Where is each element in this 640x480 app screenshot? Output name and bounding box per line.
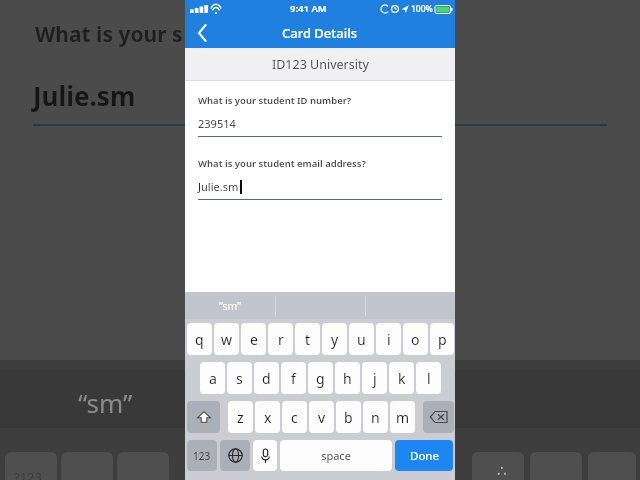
staticText: Done [410, 448, 439, 464]
staticText: w [221, 330, 233, 349]
button[interactable]: w [214, 323, 239, 355]
staticText: q [195, 330, 204, 349]
button[interactable]: d [254, 362, 279, 394]
staticText: “sm” [78, 385, 133, 420]
staticText: x [264, 408, 272, 427]
staticText: o [411, 330, 420, 349]
button[interactable]: space [280, 440, 392, 471]
button[interactable]: q [187, 323, 212, 355]
staticText: Julie.sm [198, 179, 239, 194]
staticText: Card Details [282, 24, 358, 42]
button[interactable]: z [228, 401, 253, 433]
staticText: i [387, 330, 391, 349]
button[interactable]: Shift [187, 401, 220, 433]
staticText: y [331, 330, 339, 349]
button[interactable]: What is your student email address? [198, 157, 442, 200]
staticText: space [321, 448, 351, 463]
button[interactable]: y [322, 323, 347, 355]
staticText: f [291, 369, 296, 388]
staticText: r [278, 330, 284, 349]
button[interactable]: s [227, 362, 252, 394]
staticText: b [344, 408, 353, 427]
button[interactable]: j [362, 362, 387, 394]
staticText: l [427, 369, 431, 388]
staticText: e [250, 330, 258, 349]
staticText: c [291, 408, 298, 427]
staticText: z [237, 408, 244, 427]
button[interactable]: g [308, 362, 333, 394]
button[interactable]: v [309, 401, 334, 433]
button[interactable]: Back [185, 17, 219, 48]
staticText: m [396, 408, 410, 427]
button[interactable]: i [376, 323, 401, 355]
button[interactable]: c [282, 401, 307, 433]
staticText: k [398, 369, 406, 388]
staticText: 9:41 AM [290, 2, 327, 15]
staticText: j [373, 369, 377, 388]
staticText: ID123 University [272, 56, 369, 73]
staticText: d [262, 369, 271, 388]
staticText: n [371, 408, 380, 427]
staticText: What is your student ID number? [198, 94, 352, 107]
button[interactable]: k [389, 362, 414, 394]
staticText: 123 [193, 449, 211, 463]
button[interactable]: m [390, 401, 415, 433]
button[interactable]: u [349, 323, 374, 355]
staticText: v [318, 408, 326, 427]
button[interactable]: What is your student ID number? [198, 94, 442, 137]
button[interactable]: o [403, 323, 428, 355]
button[interactable]: p [430, 323, 454, 355]
button[interactable]: l [416, 362, 441, 394]
staticText: a [209, 369, 217, 388]
staticText: h [343, 369, 352, 388]
staticText: t [305, 330, 311, 349]
button[interactable]: Backspace [423, 401, 454, 433]
staticText: s [236, 369, 243, 388]
staticText: u [357, 330, 366, 349]
staticText: ∴ [497, 462, 507, 479]
staticText: 100% [411, 3, 433, 15]
button[interactable]: h [335, 362, 360, 394]
button[interactable]: a [200, 362, 225, 394]
staticText: “sm” [219, 299, 241, 313]
button[interactable]: Change keyboard language [220, 440, 250, 471]
button[interactable]: r [268, 323, 293, 355]
button[interactable]: f [281, 362, 306, 394]
button[interactable]: “sm” [185, 292, 275, 319]
staticText: g [316, 369, 325, 388]
staticText: What is your student email address? [198, 157, 366, 170]
button[interactable]: Voice input [253, 440, 277, 471]
button[interactable]: e [241, 323, 266, 355]
staticText: p [438, 330, 447, 349]
button[interactable]: b [336, 401, 361, 433]
staticText: Julie.sm [33, 78, 136, 113]
button[interactable]: n [363, 401, 388, 433]
button[interactable]: t [295, 323, 320, 355]
staticText: What is your s [35, 20, 183, 49]
staticText: 239514 [198, 116, 236, 131]
button[interactable]: x [255, 401, 280, 433]
button[interactable]: Done [395, 440, 453, 471]
staticText: ?123 [14, 468, 42, 480]
button[interactable]: 123 [187, 440, 217, 471]
